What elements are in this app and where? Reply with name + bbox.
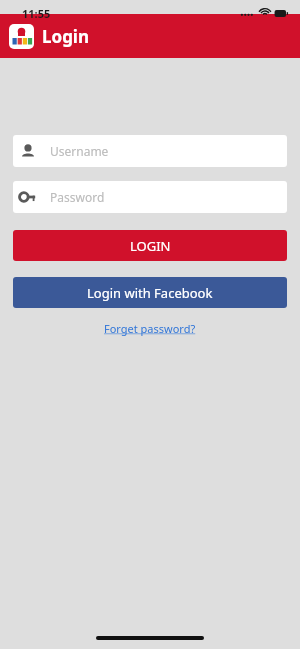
staticText: LOGIN	[130, 237, 171, 255]
button[interactable]: Password	[13, 181, 287, 213]
other: Status icons	[240, 8, 288, 19]
button[interactable]: LOGIN	[13, 230, 287, 261]
staticText: Password	[50, 189, 105, 205]
staticText: Login with Facebook	[87, 284, 213, 302]
other: App logo	[9, 24, 34, 49]
button[interactable]: Forget password?	[100, 317, 200, 340]
staticText: 11:55	[22, 6, 51, 21]
button[interactable]: Username	[13, 135, 287, 167]
button[interactable]: Login with Facebook	[13, 277, 287, 308]
staticText: Login	[42, 25, 90, 48]
staticText: Forget password?	[104, 321, 196, 336]
staticText: Username	[50, 143, 109, 159]
